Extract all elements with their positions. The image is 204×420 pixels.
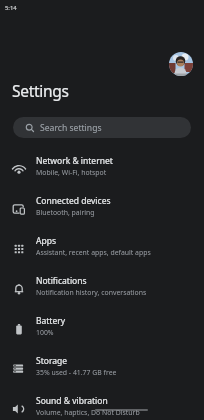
- staticText: 35% used - 41.77 GB free: [36, 368, 117, 377]
- staticText: Battery: [36, 315, 66, 327]
- staticText: Volume, haptics, Do Not Disturb: [36, 408, 140, 417]
- staticText: Sound & vibration: [36, 395, 108, 407]
- staticText: Bluetooth, pairing: [36, 208, 95, 217]
- staticText: Notifications: [36, 275, 87, 287]
- button[interactable]: Notifications: [0, 269, 204, 309]
- staticText: Search settings: [40, 122, 102, 134]
- button[interactable]: Network & internet: [0, 149, 204, 189]
- staticText: Apps: [36, 235, 56, 247]
- staticText: Settings: [12, 80, 69, 101]
- button[interactable]: Battery: [0, 309, 204, 349]
- staticText: Storage: [36, 355, 68, 367]
- staticText: Connected devices: [36, 195, 111, 207]
- button[interactable]: Sound & vibration: [0, 389, 204, 420]
- button[interactable]: Storage: [0, 349, 204, 389]
- button[interactable]: Search settings: [13, 117, 191, 138]
- staticText: Mobile, Wi-Fi, hotspot: [36, 168, 107, 177]
- staticText: Notification history, conversations: [36, 288, 147, 297]
- button[interactable]: Connected devices: [0, 189, 204, 229]
- staticText: Network & internet: [36, 155, 113, 167]
- button[interactable]: [169, 52, 193, 76]
- button[interactable]: Apps: [0, 229, 204, 269]
- staticText: Assistant, recent apps, default apps: [36, 248, 151, 257]
- staticText: 100%: [36, 328, 54, 337]
- staticText: 5:14: [5, 4, 17, 12]
